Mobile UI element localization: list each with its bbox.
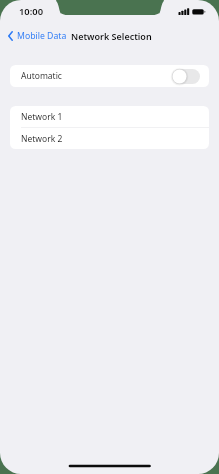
staticText: 10:00 — [19, 5, 44, 18]
staticText: Network 2 — [21, 133, 63, 145]
staticText: Network Selection — [71, 30, 152, 42]
staticText: Mobile Data — [17, 30, 67, 42]
button[interactable]: Network 2 — [10, 128, 209, 149]
button[interactable]: Automatic toggle — [172, 69, 200, 84]
button[interactable]: Automatic — [10, 65, 209, 87]
button[interactable]: Network 1 — [10, 106, 209, 127]
staticText: Network 1 — [21, 111, 63, 123]
button[interactable]: Mobile Data — [0, 28, 73, 44]
staticText: Automatic — [21, 70, 62, 82]
